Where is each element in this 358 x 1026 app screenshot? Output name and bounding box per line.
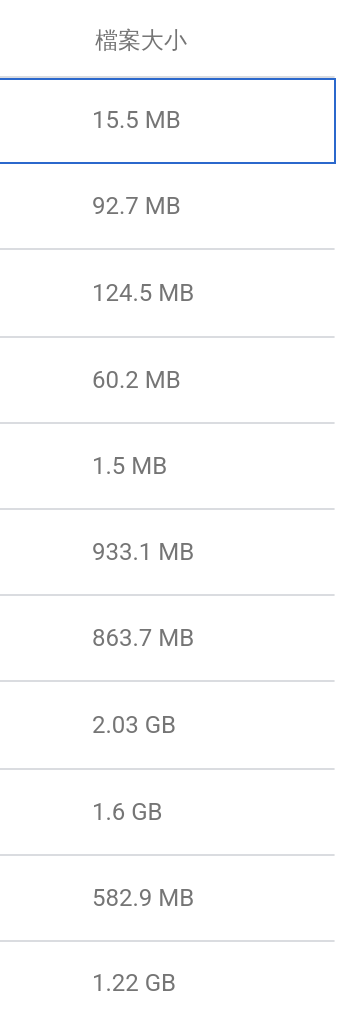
staticText: 1.5 MB	[92, 452, 168, 480]
button[interactable]: 124.5 MB	[0, 250, 336, 338]
button[interactable]: 15.5 MB	[0, 78, 336, 164]
button[interactable]: 2.03 GB	[0, 682, 336, 770]
button[interactable]: 582.9 MB	[0, 856, 336, 942]
staticText: 60.2 MB	[92, 366, 181, 394]
button[interactable]: 863.7 MB	[0, 596, 336, 682]
staticText: 933.1 MB	[92, 538, 195, 566]
other: Selected cell	[0, 78, 336, 164]
staticText: 582.9 MB	[92, 884, 195, 912]
staticText: 2.03 GB	[92, 711, 177, 739]
button[interactable]: 933.1 MB	[0, 510, 336, 596]
button[interactable]: 1.22 GB	[0, 942, 336, 1026]
button[interactable]: 1.6 GB	[0, 770, 336, 856]
button[interactable]: 92.7 MB	[0, 164, 336, 250]
button[interactable]: 檔案大小	[0, 0, 336, 76]
staticText: 92.7 MB	[92, 192, 181, 220]
staticText: 863.7 MB	[92, 624, 195, 652]
staticText: 檔案大小	[95, 26, 187, 55]
button[interactable]: 60.2 MB	[0, 338, 336, 424]
staticText: 124.5 MB	[92, 279, 195, 307]
staticText: 1.22 GB	[92, 969, 177, 997]
staticText: 1.6 GB	[92, 798, 163, 826]
button[interactable]: 1.5 MB	[0, 424, 336, 510]
staticText: 15.5 MB	[92, 106, 181, 134]
